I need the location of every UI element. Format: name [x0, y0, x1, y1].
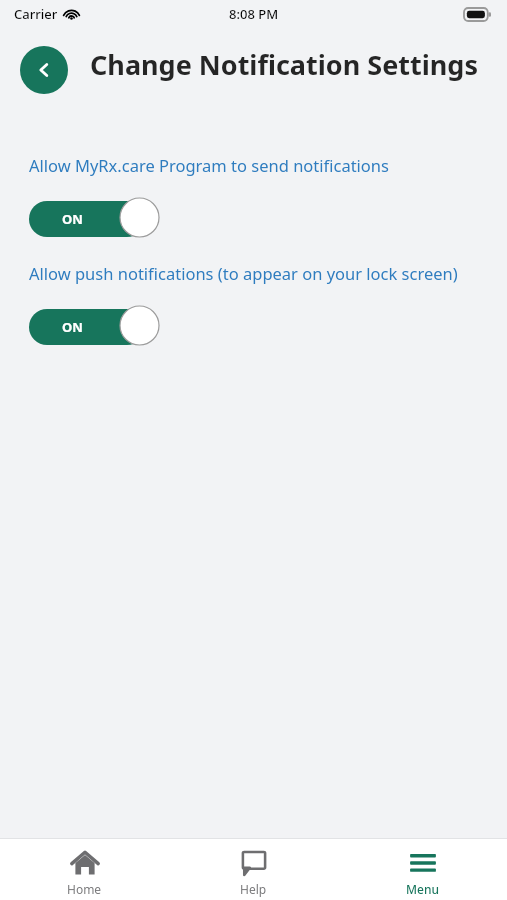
- staticText: Allow push notifications (to appear on y…: [29, 262, 473, 284]
- staticText: Menu: [406, 881, 439, 897]
- button[interactable]: Home: [0, 839, 169, 900]
- button[interactable]: Back: [20, 46, 68, 94]
- staticText: Home: [67, 881, 102, 897]
- button[interactable]: Help: [169, 839, 338, 900]
- button[interactable]: ON: [29, 304, 160, 346]
- staticText: Help: [240, 881, 267, 897]
- staticText: ON: [62, 210, 83, 228]
- staticText: 8:08 PM: [229, 5, 279, 23]
- staticText: ON: [62, 318, 83, 336]
- staticText: Change Notification Settings: [90, 46, 478, 83]
- button[interactable]: ON: [29, 196, 160, 238]
- staticText: Allow MyRx.care Program to send notifica…: [29, 154, 473, 176]
- button[interactable]: Menu: [338, 839, 507, 900]
- staticText: Carrier: [14, 5, 58, 23]
